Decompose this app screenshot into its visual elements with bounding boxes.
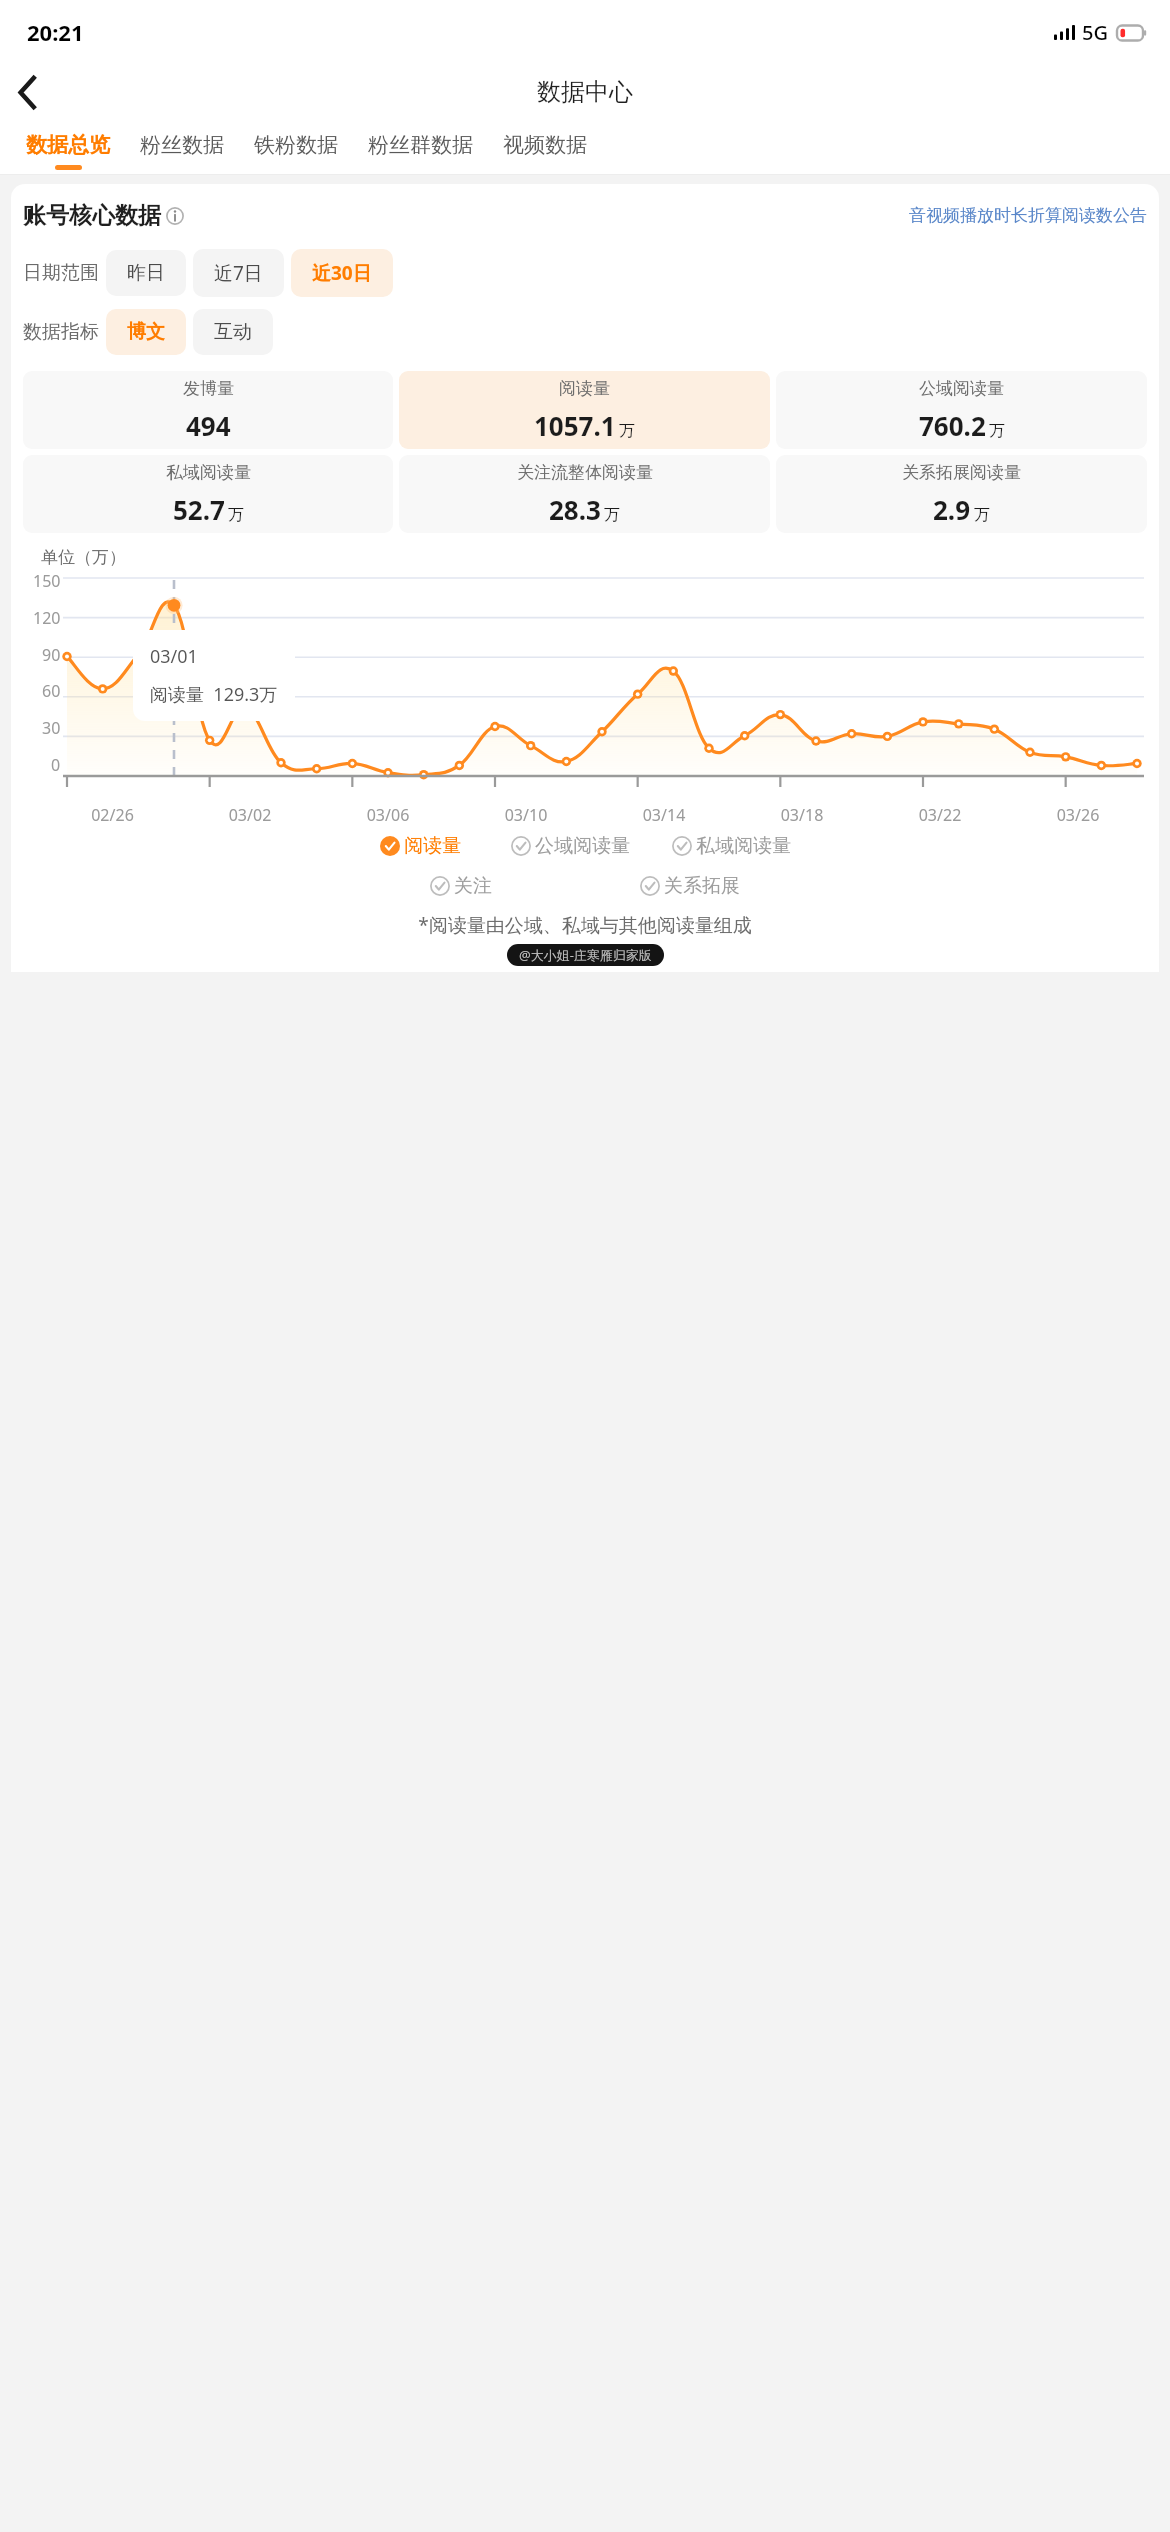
staticText: 0 <box>51 754 61 776</box>
staticText: 账号核心数据 <box>23 201 161 230</box>
staticText: 粉丝数据 <box>140 132 224 158</box>
staticText: 万 <box>989 421 1005 441</box>
button[interactable]: 铁粉数据 <box>239 120 353 175</box>
staticText: 30 <box>42 717 61 739</box>
staticText: 阅读量 129.3万 <box>150 682 278 707</box>
button[interactable]: 阅读量 <box>380 834 461 858</box>
staticText: 关注流整体阅读量 <box>517 462 653 483</box>
staticText: 03/26 <box>1009 804 1147 826</box>
staticText: 20:21 <box>27 17 84 47</box>
button[interactable]: 阅读量 <box>399 371 770 449</box>
button[interactable]: 关系拓展 <box>640 874 740 898</box>
staticText: 关系拓展阅读量 <box>902 462 1021 483</box>
staticText: 近30日 <box>312 260 372 286</box>
staticText: 03/18 <box>733 804 871 826</box>
staticText: 私域阅读量 <box>166 462 251 483</box>
button[interactable]: 数据总览 <box>11 120 125 175</box>
button[interactable]: 公域阅读量 <box>776 371 1147 449</box>
staticText: 150 <box>33 570 61 592</box>
staticText: 万 <box>228 505 244 525</box>
staticText: 1057.1 <box>534 408 616 443</box>
staticText: 5G <box>1082 19 1108 46</box>
staticText: 数据指标 <box>23 320 99 344</box>
button[interactable]: 公域阅读量 <box>511 834 630 858</box>
staticText: 阅读量 <box>404 834 461 858</box>
staticText: 494 <box>186 408 231 443</box>
staticText: 视频数据 <box>503 132 587 158</box>
staticText: 28.3 <box>549 492 601 527</box>
button[interactable]: 昨日 <box>106 250 186 296</box>
staticText: 2.9 <box>933 492 971 527</box>
staticText: 日期范围 <box>23 261 99 285</box>
staticText: 90 <box>42 644 61 666</box>
staticText: 760.2 <box>919 408 986 443</box>
button[interactable]: 账号核心数据 <box>23 201 184 230</box>
staticText: 公域阅读量 <box>535 834 630 858</box>
staticText: 互动 <box>214 320 252 344</box>
button[interactable]: 私域阅读量 <box>23 455 393 533</box>
staticText: 万 <box>974 505 990 525</box>
staticText: 单位（万） <box>41 547 126 568</box>
staticText: 阅读量 <box>559 378 610 399</box>
button[interactable]: 关注流整体阅读量 <box>399 455 770 533</box>
button[interactable]: 互动 <box>193 309 273 355</box>
staticText: 昨日 <box>127 261 165 285</box>
staticText: @大小姐-庄寒雁归家版 <box>519 946 652 964</box>
button[interactable]: 粉丝群数据 <box>353 120 488 175</box>
button[interactable]: 关系拓展阅读量 <box>776 455 1147 533</box>
staticText: 发博量 <box>183 378 234 399</box>
button[interactable]: Back <box>0 65 54 119</box>
button[interactable]: 粉丝数据 <box>125 120 239 175</box>
staticText: 近7日 <box>214 260 263 286</box>
button[interactable]: 音视频播放时长折算阅读数公告 <box>909 205 1147 226</box>
staticText: 关注 <box>454 874 492 898</box>
button[interactable]: 关注 <box>430 874 492 898</box>
staticText: 03/06 <box>319 804 457 826</box>
staticText: 博文 <box>127 320 165 344</box>
staticText: 03/01 <box>150 644 198 669</box>
button[interactable]: 发博量 <box>23 371 393 449</box>
button[interactable]: 博文 <box>106 309 186 355</box>
staticText: 数据中心 <box>537 77 633 107</box>
button[interactable]: 近30日 <box>291 249 393 297</box>
staticText: 120 <box>33 607 61 629</box>
staticText: 粉丝群数据 <box>368 132 473 158</box>
staticText: 私域阅读量 <box>696 834 791 858</box>
staticText: 万 <box>619 421 635 441</box>
staticText: 数据总览 <box>26 132 110 158</box>
button[interactable]: 私域阅读量 <box>672 834 791 858</box>
staticText: 60 <box>42 680 61 702</box>
staticText: 铁粉数据 <box>254 132 338 158</box>
staticText: 02/26 <box>44 804 181 826</box>
button[interactable]: 近7日 <box>193 249 284 297</box>
staticText: 03/22 <box>871 804 1009 826</box>
staticText: 关系拓展 <box>664 874 740 898</box>
button[interactable]: 视频数据 <box>488 120 602 175</box>
staticText: 万 <box>604 505 620 525</box>
staticText: 52.7 <box>173 492 225 527</box>
staticText: 03/10 <box>457 804 595 826</box>
staticText: *阅读量由公域、私域与其他阅读量组成 <box>23 912 1147 938</box>
staticText: 03/02 <box>181 804 319 826</box>
staticText: 03/14 <box>595 804 733 826</box>
staticText: 公域阅读量 <box>919 378 1004 399</box>
